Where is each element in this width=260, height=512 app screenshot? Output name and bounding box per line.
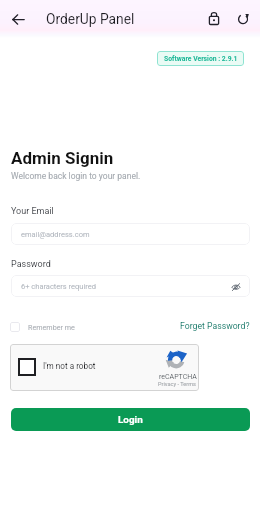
staticText: Your Email [11,206,54,217]
staticText: Privacy - Terms [158,381,197,388]
staticText: email@address.com [21,230,90,239]
staticText: Admin Signin [11,148,114,168]
staticText: OrderUp Panel [46,11,135,27]
staticText: Login [118,414,143,426]
staticText: Remember me [28,323,75,331]
staticText: Password [11,259,51,270]
button[interactable]: email@address.com [11,223,250,245]
button[interactable]: I'm not a robot [18,358,36,376]
staticText: Welcome back login to your panel. [11,171,141,181]
button[interactable]: Login [11,408,250,431]
button[interactable]: Lock [203,7,225,29]
staticText: 6+ characters required [21,282,96,291]
staticText: I'm not a robot [43,361,96,371]
button[interactable]: Show password [229,280,243,294]
staticText: Software Version : 2.9.1 [164,55,238,63]
button[interactable]: Back [6,7,30,31]
staticText: Forget Password? [180,321,250,331]
button[interactable]: Refresh [232,8,254,30]
button[interactable]: Forget Password? [179,320,251,332]
button[interactable]: Software Version : 2.9.1 [157,51,244,66]
button[interactable]: Remember me [10,322,75,332]
staticText: reCAPTCHA [159,373,197,381]
button[interactable]: I'm not a robot [10,344,199,391]
button[interactable]: 6+ characters required [11,275,250,297]
